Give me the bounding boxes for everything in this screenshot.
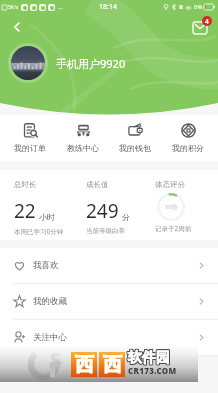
button[interactable]: 我的钱包	[113, 121, 157, 155]
staticText: 我的钱包	[119, 143, 151, 153]
staticText: 软件园	[127, 349, 169, 367]
button[interactable]: 我的积分	[166, 121, 210, 155]
button[interactable]: 我的收藏	[0, 284, 218, 319]
staticText: 软件园	[128, 348, 170, 366]
staticText: 我的收藏	[33, 296, 67, 307]
button[interactable]: 我喜欢	[0, 248, 218, 283]
staticText: CR173.COM	[128, 365, 177, 376]
staticText: 软件园	[129, 350, 171, 368]
staticText: 手机用户9920	[56, 56, 126, 71]
button[interactable]: 关注中心	[0, 320, 218, 355]
staticText: 本周已学习0分钟	[14, 227, 64, 236]
staticText: B	[179, 3, 183, 11]
staticText: 软件园	[128, 350, 170, 368]
button[interactable]: 教练中心	[61, 121, 105, 155]
staticText: 4	[205, 17, 209, 26]
staticText: 软件园	[129, 348, 171, 366]
staticText: 10分	[165, 203, 178, 211]
staticText: 分	[122, 212, 130, 222]
staticText: 成长值	[86, 180, 109, 189]
staticText: 体态评分	[155, 180, 185, 189]
staticText: 软件园	[128, 349, 170, 367]
staticText: 我的订单	[14, 143, 46, 153]
staticText: 22	[14, 198, 36, 224]
staticText: ...	[58, 3, 63, 11]
staticText: 我的积分	[172, 143, 204, 153]
staticText: 软件园	[129, 349, 171, 367]
staticText: 我喜欢	[33, 260, 59, 271]
staticText: 记录于2周前	[155, 224, 192, 233]
staticText: 关注中心	[33, 332, 67, 343]
staticText: 当前等级白带	[86, 227, 125, 235]
staticText: 5K/s	[8, 4, 19, 11]
button[interactable]: Avatar	[8, 43, 48, 83]
staticText: 6%	[194, 3, 203, 11]
staticText: 总时长	[14, 180, 37, 189]
staticText: 西	[103, 353, 122, 377]
staticText: 小时	[39, 212, 55, 222]
staticText: 249	[86, 198, 119, 224]
staticText: 教练中心	[67, 143, 99, 153]
staticText: 软件园	[127, 350, 169, 368]
button[interactable]: Messages	[189, 15, 213, 39]
staticText: 18:14	[99, 2, 117, 12]
button[interactable]: 我的订单	[8, 121, 52, 155]
button[interactable]: Back	[6, 16, 28, 38]
staticText: 西	[75, 353, 94, 377]
staticText: 软件园	[127, 348, 169, 366]
